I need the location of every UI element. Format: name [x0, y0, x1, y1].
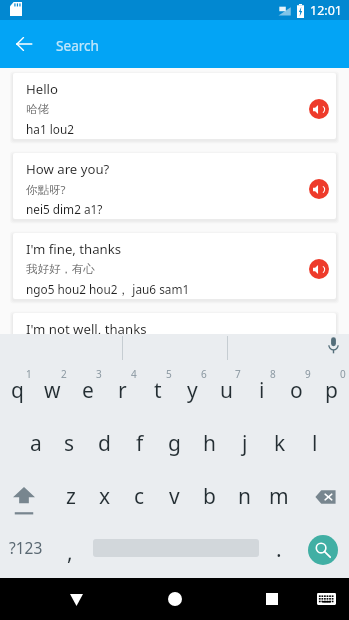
button[interactable]: Voice input — [305, 334, 349, 365]
button[interactable]: n — [227, 471, 262, 524]
staticText: 2 — [61, 367, 67, 381]
staticText: g — [168, 429, 181, 458]
staticText: 0 — [340, 367, 346, 381]
staticText: nei5 dim2 a1? — [26, 201, 103, 217]
button[interactable]: I'm fine, thanks — [13, 233, 336, 299]
button[interactable]: Shift — [0, 471, 52, 524]
button[interactable]: Hide keyboard — [46, 578, 106, 620]
button[interactable]: k — [262, 418, 297, 471]
staticText: n — [238, 482, 251, 511]
staticText: 8 — [270, 367, 276, 381]
button[interactable]: Play pronunciation — [309, 259, 329, 279]
staticText: 12:01 — [310, 2, 342, 19]
button[interactable]: Recent apps — [242, 578, 302, 620]
button[interactable]: 7 — [209, 365, 244, 418]
staticText: ?123 — [9, 537, 43, 558]
staticText: 你點呀? — [26, 182, 66, 198]
button[interactable]: Backspace — [296, 471, 349, 524]
button[interactable]: c — [122, 471, 157, 524]
button[interactable]: b — [192, 471, 227, 524]
staticText: h — [203, 429, 216, 458]
button[interactable]: 6 — [175, 365, 210, 418]
button[interactable]: s — [52, 418, 87, 471]
staticText: t — [154, 376, 162, 405]
button[interactable]: , — [52, 524, 88, 577]
button[interactable]: d — [87, 418, 122, 471]
button[interactable]: I'm not well, thanks — [13, 313, 336, 334]
button[interactable]: j — [227, 418, 262, 471]
button[interactable]: 2 — [35, 365, 70, 418]
staticText: 7 — [235, 367, 241, 381]
button[interactable]: Play pronunciation — [309, 99, 329, 119]
button[interactable]: Hello — [13, 73, 336, 139]
staticText: l — [312, 429, 318, 458]
staticText: Hello — [26, 80, 58, 98]
button[interactable]: 8 — [244, 365, 279, 418]
staticText: I'm not well, thanks — [26, 320, 147, 334]
staticText: o — [290, 376, 303, 405]
staticText: y — [187, 376, 198, 405]
button[interactable]: ?123 — [0, 524, 52, 577]
staticText: How are you? — [26, 160, 110, 178]
button[interactable]: . — [262, 524, 296, 577]
staticText: a — [30, 429, 42, 458]
staticText: ha1 lou2 — [26, 121, 74, 137]
staticText: . — [276, 535, 282, 564]
button[interactable]: Back — [4, 20, 44, 68]
button[interactable]: z — [53, 471, 88, 524]
button[interactable]: m — [261, 471, 296, 524]
staticText: 5 — [166, 367, 172, 381]
staticText: z — [66, 482, 76, 511]
button[interactable]: h — [192, 418, 227, 471]
staticText: e — [82, 376, 94, 405]
staticText: Search — [56, 36, 100, 55]
staticText: 4 — [131, 367, 137, 381]
staticText: q — [11, 376, 24, 405]
button[interactable]: 1 — [0, 365, 35, 418]
staticText: , — [67, 538, 73, 567]
button[interactable]: a — [18, 418, 53, 471]
staticText: 9 — [305, 367, 311, 381]
staticText: x — [99, 482, 111, 511]
staticText: r — [118, 376, 127, 405]
staticText: 6 — [201, 367, 207, 381]
staticText: v — [169, 482, 180, 511]
button[interactable]: 0 — [314, 365, 349, 418]
staticText: f — [136, 429, 144, 458]
button[interactable]: 4 — [105, 365, 140, 418]
staticText: i — [259, 376, 265, 405]
staticText: 哈佬 — [26, 102, 49, 116]
button[interactable]: v — [157, 471, 192, 524]
staticText: b — [203, 482, 216, 511]
button[interactable]: Home — [145, 578, 205, 620]
staticText: 我好好，有心 — [26, 262, 95, 276]
staticText: 3 — [96, 367, 102, 381]
button[interactable]: 9 — [279, 365, 314, 418]
button[interactable]: f — [122, 418, 157, 471]
staticText: ngo5 hou2 hou2， jau6 sam1 — [26, 281, 190, 297]
button[interactable]: Play pronunciation — [309, 179, 329, 199]
button[interactable]: g — [157, 418, 192, 471]
button[interactable]: Switch keyboard — [306, 578, 346, 620]
button[interactable]: 5 — [140, 365, 175, 418]
staticText: p — [325, 376, 338, 405]
staticText: I'm fine, thanks — [26, 240, 122, 258]
staticText: s — [64, 429, 75, 458]
staticText: u — [220, 376, 233, 405]
button[interactable]: x — [87, 471, 122, 524]
staticText: c — [134, 482, 145, 511]
staticText: j — [242, 429, 248, 458]
button[interactable]: 3 — [70, 365, 105, 418]
button[interactable]: How are you? — [13, 153, 336, 219]
staticText: w — [44, 376, 61, 405]
button[interactable]: Search — [308, 535, 338, 565]
staticText: d — [98, 429, 111, 458]
staticText: k — [274, 429, 286, 458]
staticText: m — [269, 482, 289, 511]
button[interactable]: l — [297, 418, 332, 471]
staticText: 1 — [26, 367, 32, 381]
